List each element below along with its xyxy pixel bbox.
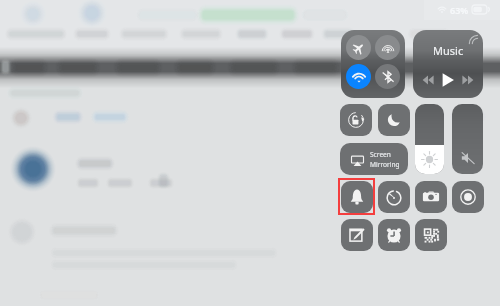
- button[interactable]: AirDrop: [375, 35, 400, 60]
- button[interactable]: Bluetooth: [375, 64, 400, 89]
- button[interactable]: Wi-Fi: [346, 64, 371, 89]
- button[interactable]: Screen Mirroring: [340, 143, 408, 175]
- button[interactable]: Silent Mode: [341, 181, 373, 213]
- button[interactable]: Screen Record: [452, 181, 484, 213]
- staticText: Music: [433, 43, 464, 58]
- staticText: 63%: [450, 4, 469, 15]
- button[interactable]: Music: [413, 30, 483, 98]
- button[interactable]: Brightness: [415, 104, 444, 174]
- button[interactable]: Airplane Mode: [346, 35, 371, 60]
- button[interactable]: Camera: [415, 181, 447, 213]
- staticText: Screen Mirroring: [370, 150, 400, 169]
- button[interactable]: Do Not Disturb: [378, 104, 410, 136]
- button[interactable]: Volume: [452, 104, 483, 174]
- button[interactable]: Timer: [378, 181, 410, 213]
- button[interactable]: Notes: [341, 219, 373, 251]
- button[interactable]: Alarm: [378, 219, 410, 251]
- button[interactable]: Rotation Lock: [340, 104, 372, 136]
- button[interactable]: QR Code Reader: [415, 219, 447, 251]
